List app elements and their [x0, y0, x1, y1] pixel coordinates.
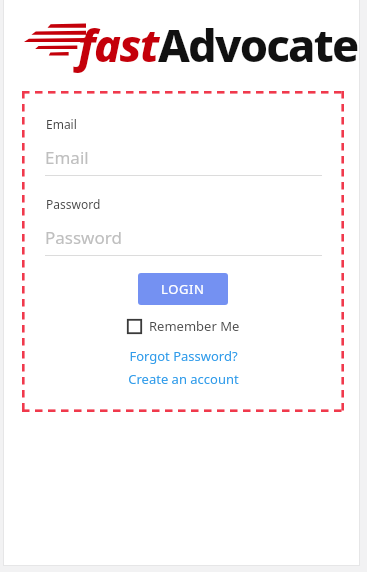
staticText: fast: [78, 14, 158, 75]
button[interactable]: LOGIN: [138, 273, 228, 305]
staticText: Email: [45, 146, 89, 169]
staticText: Password: [45, 226, 122, 249]
staticText: Remember Me: [149, 317, 240, 335]
staticText: Advocate: [158, 14, 358, 75]
staticText: Password: [46, 196, 101, 212]
other: fastAdvocate logo: [0, 0, 367, 90]
staticText: LOGIN: [161, 280, 205, 298]
staticText: Forgot Password?: [129, 347, 238, 365]
button[interactable]: Create an account: [22, 370, 344, 388]
button[interactable]: Remember Me: [127, 317, 240, 335]
button[interactable]: Forgot Password?: [22, 347, 344, 365]
staticText: Create an account: [128, 370, 239, 388]
staticText: Email: [46, 116, 77, 132]
